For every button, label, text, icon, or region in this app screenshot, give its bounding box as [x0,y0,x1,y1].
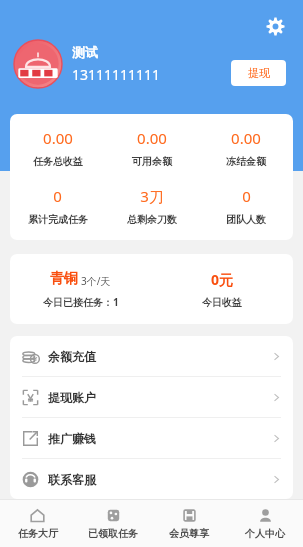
button[interactable]: 0元 [151,254,293,324]
staticText: 余额充值 [48,349,96,364]
staticText: 3刀 [140,186,164,206]
staticText: 任务总收益 [33,155,83,168]
button[interactable]: 0.00 [199,128,293,168]
staticText: 提现 [248,66,270,80]
staticText: 0元 [211,270,234,289]
button[interactable]: 个人中心 [227,500,303,547]
staticText: 任务大厅 [18,527,58,540]
button[interactable]: 0.00 [10,128,105,168]
staticText: 提现账户 [48,390,96,405]
staticText: 冻结金额 [226,155,266,168]
staticText: 13111111111 [72,65,161,84]
staticText: 0 [242,186,251,206]
button[interactable]: Settings [257,8,293,44]
button[interactable]: 已领取任务 [75,500,151,547]
staticText: 累计完成任务 [28,213,88,226]
staticText: 联系客服 [48,472,96,487]
button[interactable]: 青铜 [10,254,151,324]
staticText: 总剩余刀数 [127,213,177,226]
staticText: 今日已接任务：1 [43,295,119,309]
staticText: 已领取任务 [88,527,138,540]
staticText: 青铜 [50,270,78,288]
button[interactable]: 0 [10,186,105,226]
staticText: 团队人数 [226,213,266,226]
staticText: 测试 [72,44,98,60]
button[interactable]: 推广赚钱 [10,418,293,459]
button[interactable]: 3刀 [105,186,199,226]
staticText: 0.00 [137,128,167,148]
button[interactable]: 提现账户 [10,377,293,418]
button[interactable]: 余额充值 [10,336,293,377]
button[interactable]: 联系客服 [10,459,293,499]
button[interactable]: 提现 [231,60,286,86]
staticText: 个人中心 [245,527,285,540]
staticText: 0.00 [43,128,73,148]
staticText: 会员尊享 [169,527,209,540]
staticText: 0 [53,186,62,206]
button[interactable]: 0.00 [105,128,199,168]
staticText: 今日收益 [202,296,242,309]
staticText: 可用余额 [132,155,172,168]
button[interactable]: 测试 [14,40,161,88]
button[interactable]: 0 [199,186,293,226]
staticText: 推广赚钱 [48,431,96,446]
button[interactable]: 任务大厅 [0,500,75,547]
staticText: 3个/天 [81,274,111,288]
staticText: 0.00 [231,128,261,148]
button[interactable]: 会员尊享 [151,500,227,547]
